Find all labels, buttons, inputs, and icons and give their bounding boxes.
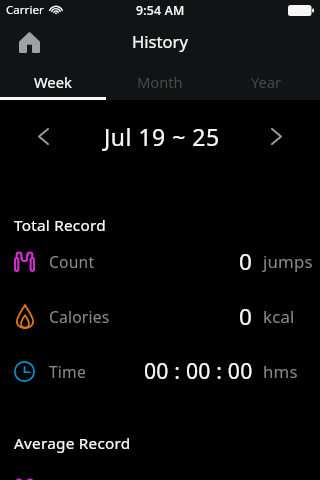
- staticText: Carrier: [6, 2, 44, 18]
- button[interactable]: Month: [106, 63, 213, 100]
- staticText: Time: [49, 361, 86, 382]
- button[interactable]: Next week: [259, 119, 293, 153]
- staticText: History: [132, 30, 188, 53]
- button[interactable]: Time: [0, 358, 320, 384]
- staticText: hms: [263, 360, 298, 383]
- staticText: jumps: [263, 250, 313, 273]
- staticText: Month: [137, 72, 183, 92]
- button[interactable]: Count: [0, 248, 320, 274]
- button[interactable]: Week: [0, 63, 106, 100]
- button[interactable]: Calories: [0, 303, 320, 329]
- staticText: 9:54 AM: [136, 2, 185, 19]
- staticText: 0: [239, 301, 253, 327]
- button[interactable]: Count: [0, 475, 320, 480]
- staticText: Total Record: [14, 215, 106, 236]
- button[interactable]: Year: [213, 63, 320, 100]
- staticText: Count: [49, 251, 95, 272]
- staticText: 00 : 00 : 00: [144, 356, 253, 382]
- staticText: Year: [251, 72, 282, 92]
- staticText: Calories: [49, 306, 110, 327]
- staticText: Week: [34, 72, 72, 92]
- button[interactable]: Home: [9, 22, 49, 62]
- staticText: Average Record: [14, 433, 131, 454]
- staticText: 0: [239, 246, 253, 272]
- staticText: Jul 19 ~ 25: [104, 121, 220, 152]
- button[interactable]: Previous week: [26, 119, 60, 153]
- staticText: kcal: [263, 305, 295, 328]
